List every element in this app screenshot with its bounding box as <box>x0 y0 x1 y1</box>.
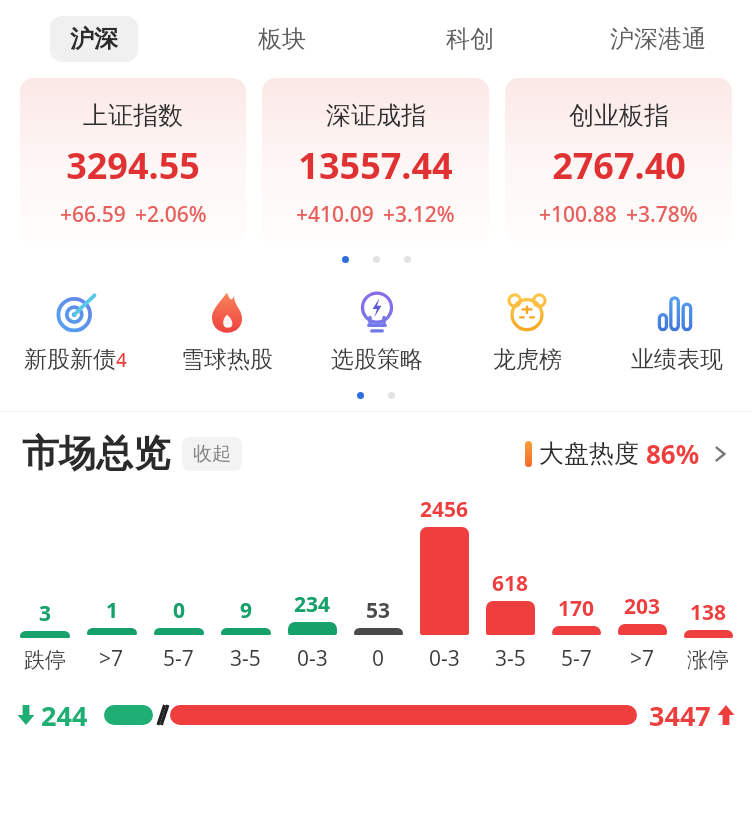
staticText: 3294.55 <box>66 141 200 190</box>
staticText: 0-3 <box>429 644 460 673</box>
staticText: 3 <box>39 599 52 628</box>
staticText: 市场总览 <box>22 430 170 477</box>
button[interactable]: 科创 <box>426 16 514 62</box>
staticText: 收起 <box>193 442 231 466</box>
staticText: 跌停 <box>24 647 66 673</box>
staticText: 5-7 <box>561 644 592 673</box>
staticText: 业绩表现 <box>631 345 723 374</box>
staticText: 0 <box>372 644 385 673</box>
staticText: 选股策略 <box>331 345 423 374</box>
button[interactable]: 深证成指 <box>262 78 489 244</box>
staticText: 170 <box>558 594 595 623</box>
button[interactable]: 雪球热股 <box>151 285 302 378</box>
button[interactable]: 沪深港通 <box>590 16 726 62</box>
staticText: 上证指数 <box>83 100 183 131</box>
button[interactable]: 203 <box>612 495 672 673</box>
other: 上涨 <box>716 705 736 725</box>
staticText: 86% <box>646 436 700 471</box>
staticText: 244 <box>41 697 88 734</box>
other: 业绩表现 <box>655 290 699 334</box>
staticText: 3-5 <box>230 644 261 673</box>
staticText: 2767.40 <box>552 141 686 190</box>
staticText: 4 <box>116 347 127 373</box>
staticText: >7 <box>99 644 124 673</box>
staticText: 0 <box>173 596 186 625</box>
staticText: +3.78% <box>626 200 698 229</box>
staticText: 板块 <box>258 24 306 54</box>
staticText: 5-7 <box>163 644 194 673</box>
staticText: 雪球热股 <box>181 345 273 374</box>
staticText: 新股新债 <box>24 345 116 374</box>
button[interactable]: 龙虎榜 <box>452 285 602 378</box>
staticText: 203 <box>624 592 661 621</box>
other: 雪球热股 <box>205 290 249 334</box>
button[interactable]: 138 <box>678 498 738 673</box>
staticText: 3-5 <box>495 644 526 673</box>
staticText: 138 <box>690 598 727 627</box>
button[interactable]: 选股策略 <box>302 285 452 378</box>
other: 新股新债 <box>54 290 98 334</box>
staticText: +410.09 <box>296 200 374 229</box>
staticText: 创业板指 <box>569 100 669 131</box>
button[interactable]: 新股新债 <box>0 285 151 378</box>
staticText: 53 <box>366 596 391 625</box>
staticText: 大盘热度 <box>539 438 639 469</box>
staticText: +100.88 <box>539 200 617 229</box>
button[interactable]: 创业板指 <box>505 78 732 244</box>
other: 下跌 <box>16 705 36 725</box>
button[interactable]: 业绩表现 <box>602 285 752 378</box>
button[interactable]: 上证指数 <box>20 78 246 244</box>
staticText: 涨停 <box>687 647 729 673</box>
button[interactable]: 大盘热度 <box>525 436 730 471</box>
staticText: 龙虎榜 <box>493 345 562 374</box>
staticText: 科创 <box>446 24 494 54</box>
staticText: 618 <box>492 569 529 598</box>
staticText: 13557.44 <box>298 141 453 190</box>
staticText: 234 <box>294 590 331 619</box>
staticText: 沪深 <box>70 24 118 54</box>
staticText: +3.12% <box>383 200 455 229</box>
button[interactable]: 1 <box>81 495 142 673</box>
staticText: +66.59 <box>60 200 126 229</box>
button[interactable]: 0 <box>148 495 209 673</box>
button[interactable]: 618 <box>480 495 540 673</box>
button[interactable]: 板块 <box>238 16 326 62</box>
button[interactable]: 沪深 <box>50 16 138 62</box>
button[interactable]: 2456 <box>414 495 474 673</box>
staticText: 1 <box>106 596 119 625</box>
staticText: 沪深港通 <box>610 24 706 54</box>
staticText: >7 <box>630 644 655 673</box>
staticText: 3447 <box>649 697 711 734</box>
other: 龙虎榜 <box>505 290 549 334</box>
button[interactable]: 收起 <box>182 437 242 471</box>
staticText: +2.06% <box>135 200 207 229</box>
staticText: 2456 <box>420 495 469 524</box>
staticText: 9 <box>240 596 253 625</box>
button[interactable]: 170 <box>546 495 606 673</box>
button[interactable]: 53 <box>348 495 408 673</box>
staticText: 深证成指 <box>326 100 426 131</box>
button[interactable]: 9 <box>215 495 276 673</box>
button[interactable]: 3 <box>14 498 75 673</box>
other: 选股策略 <box>355 290 399 334</box>
staticText: 0-3 <box>297 644 328 673</box>
button[interactable]: 234 <box>282 495 342 673</box>
